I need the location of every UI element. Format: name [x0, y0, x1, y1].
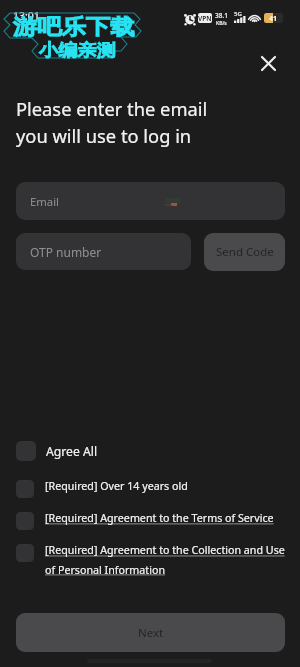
staticText: OTP number [30, 244, 102, 260]
staticText: Email [30, 194, 60, 209]
button[interactable]: [Required] Over 14 years old [16, 480, 300, 498]
button[interactable]: [Required] Agreement to the Terms of Ser… [16, 512, 300, 530]
button[interactable]: Email [16, 182, 285, 220]
staticText: Please enter the email you will use to l… [16, 96, 208, 148]
staticText: Next [138, 625, 164, 641]
button[interactable]: [Required] Agreement to the Collection a… [16, 544, 300, 578]
button[interactable]: Send Code [204, 233, 285, 271]
staticText: [Required] Agreement to the Collection a… [45, 543, 285, 577]
staticText: [Required] Over 14 years old [45, 479, 188, 494]
staticText: [Required] Agreement to the Terms of Ser… [45, 511, 274, 526]
staticText: 41 [269, 14, 278, 23]
button[interactable]: Close [252, 47, 285, 80]
button[interactable]: Agree All [16, 441, 98, 461]
staticText: Agree All [46, 443, 98, 460]
staticText: 13:01 [13, 9, 40, 23]
staticText: VPN [198, 14, 212, 23]
button[interactable]: OTP number [16, 233, 191, 270]
staticText: KB/s [216, 20, 227, 27]
button[interactable]: Next [16, 613, 285, 652]
staticText: 小编亲测 [39, 40, 116, 61]
staticText: 5G [234, 10, 242, 18]
staticText: 游吧乐下载 [13, 14, 135, 40]
staticText: Send Code [216, 244, 274, 260]
staticText: 38.1 [215, 11, 228, 20]
